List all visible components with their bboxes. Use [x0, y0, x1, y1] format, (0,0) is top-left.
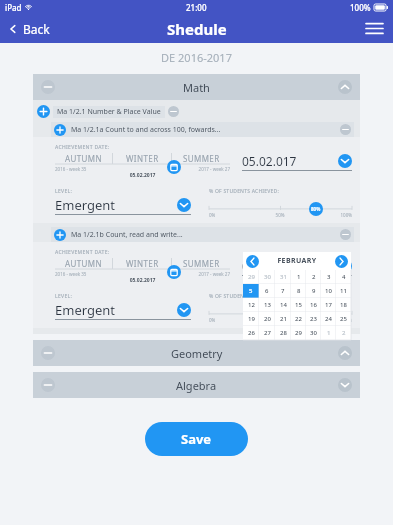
staticText: SUMMER — [183, 153, 220, 164]
button[interactable]: Expand item — [51, 122, 354, 137]
button[interactable]: 16 — [306, 298, 321, 312]
button[interactable]: 11 — [336, 284, 351, 298]
staticText: 7 — [281, 287, 285, 295]
button[interactable]: Toggle Algebra — [338, 378, 352, 392]
staticText: 16 — [310, 301, 317, 309]
staticText: 80% — [311, 311, 321, 317]
staticText: SUMMER — [183, 258, 220, 269]
button[interactable]: 24 — [321, 312, 336, 326]
button[interactable]: 19 — [243, 312, 259, 326]
button[interactable]: 8 — [291, 284, 306, 298]
staticText: AUTUMN — [65, 153, 102, 164]
button[interactable]: Open date picker — [338, 259, 352, 273]
staticText: Shedule — [167, 19, 227, 39]
button[interactable]: Next month — [335, 255, 348, 268]
button[interactable]: 21 — [275, 312, 291, 326]
staticText: 10 — [325, 287, 332, 295]
button[interactable]: 1 — [321, 326, 336, 340]
staticText: 21:00 — [186, 2, 207, 13]
button[interactable]: Collapse Geometry — [41, 346, 55, 360]
staticText: 80% — [311, 206, 321, 212]
staticText: Ma 1/2.1a Count to and across 100, fowar… — [71, 125, 340, 135]
staticText: 19 — [248, 315, 255, 323]
button[interactable]: 29 — [291, 326, 306, 340]
button[interactable]: Algebra — [33, 372, 360, 398]
button[interactable]: Collapse item — [340, 229, 351, 240]
button[interactable]: Expand item — [51, 227, 354, 242]
staticText: 23 — [310, 315, 317, 323]
staticText: 2016 - week 35 — [55, 271, 142, 277]
button[interactable]: Expand — [37, 105, 360, 118]
button[interactable]: Toggle Math — [338, 80, 352, 94]
button[interactable]: 3 — [321, 270, 336, 284]
staticText: 6 — [265, 287, 269, 295]
button[interactable]: Math — [33, 74, 360, 100]
staticText: WINTER — [126, 258, 159, 269]
button[interactable]: Menu — [356, 16, 393, 41]
button[interactable]: 15 — [291, 298, 306, 312]
button[interactable]: Save — [145, 422, 248, 456]
button[interactable]: 17 — [321, 298, 336, 312]
staticText: 2017 - week 27 — [142, 271, 230, 277]
button[interactable]: 12 — [243, 298, 259, 312]
button[interactable]: Pick date — [167, 265, 181, 279]
staticText: 8 — [297, 287, 301, 295]
staticText: 100% — [350, 2, 371, 13]
button[interactable]: 80% — [309, 307, 323, 321]
staticText: 2016 - week 35 — [55, 166, 142, 172]
button[interactable]: 31 — [275, 270, 291, 284]
button[interactable]: Choose level — [177, 303, 191, 317]
staticText: ACHIEVEMENT DATE: — [55, 249, 110, 256]
staticText: Save — [181, 430, 212, 448]
button[interactable]: Expand item — [54, 124, 66, 136]
button[interactable]: Collapse Math — [41, 80, 55, 94]
button[interactable]: Choose level — [177, 198, 191, 212]
button[interactable]: 10 — [321, 284, 336, 298]
staticText: 100% — [304, 212, 352, 218]
button[interactable]: 1 — [291, 270, 306, 284]
button[interactable]: 18 — [336, 298, 351, 312]
button[interactable]: Collapse — [168, 106, 179, 117]
button[interactable]: 25 — [336, 312, 351, 326]
button[interactable]: 13 — [259, 298, 275, 312]
staticText: 29 — [295, 329, 302, 337]
button[interactable]: 28 — [275, 326, 291, 340]
button[interactable]: 2 — [306, 270, 321, 284]
button[interactable]: 23 — [306, 312, 321, 326]
button[interactable]: Collapse Algebra — [41, 378, 55, 392]
button[interactable]: 80% — [309, 202, 323, 216]
button[interactable]: 5 — [243, 284, 259, 298]
button[interactable]: 6 — [259, 284, 275, 298]
button[interactable]: Previous month — [246, 255, 259, 268]
button[interactable]: Expand — [37, 105, 50, 118]
staticText: 50% — [256, 317, 304, 323]
button[interactable]: 14 — [275, 298, 291, 312]
button[interactable]: Geometry — [33, 340, 360, 366]
button[interactable]: Open date picker — [338, 154, 352, 168]
staticText: Emergent — [55, 196, 177, 214]
button[interactable]: Collapse item — [340, 124, 351, 135]
button[interactable]: Back — [0, 17, 60, 41]
staticText: 29 — [248, 273, 255, 281]
button[interactable]: 30 — [259, 270, 275, 284]
staticText: 18 — [340, 301, 347, 309]
staticText: WINTER — [126, 153, 159, 164]
button[interactable]: 2 — [336, 326, 351, 340]
button[interactable]: Pick date — [167, 160, 181, 174]
button[interactable]: Toggle Geometry — [338, 346, 352, 360]
button[interactable]: 4 — [336, 270, 351, 284]
button[interactable]: 22 — [291, 312, 306, 326]
button[interactable]: 7 — [275, 284, 291, 298]
staticText: % OF STUDENTS ACHIEVED: — [209, 293, 279, 300]
button[interactable]: 20 — [259, 312, 275, 326]
button[interactable]: 9 — [306, 284, 321, 298]
button[interactable]: 29 — [243, 270, 259, 284]
button[interactable]: 27 — [259, 326, 275, 340]
button[interactable]: 30 — [306, 326, 321, 340]
staticText: 05.02.2017 — [55, 277, 230, 284]
button[interactable]: 26 — [243, 326, 259, 340]
staticText: AUTUMN — [65, 258, 102, 269]
staticText: 0% — [209, 317, 256, 323]
button[interactable]: Expand item — [54, 229, 66, 241]
staticText: 3 — [327, 273, 331, 281]
